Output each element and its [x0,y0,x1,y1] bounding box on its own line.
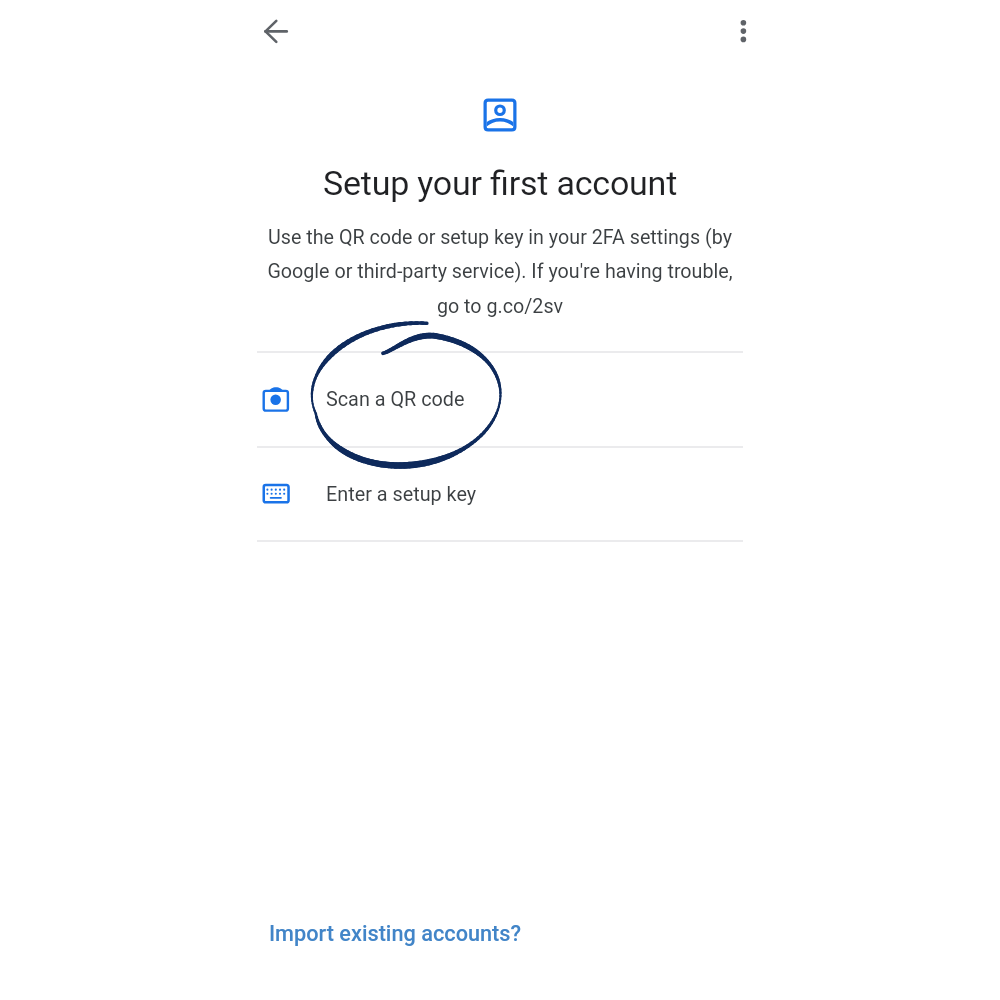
button[interactable]: Scan a QR code [257,352,743,446]
staticText: Use the QR code or setup key in your 2FA… [240,226,760,318]
staticText: Setup your first account [0,163,1000,203]
button[interactable]: Import existing accounts? [258,910,511,956]
staticText: Scan a QR code [326,388,465,411]
button[interactable]: More options [720,8,766,54]
staticText: Import existing accounts? [269,921,522,946]
button[interactable]: Enter a setup key [257,447,743,541]
button[interactable]: Back [253,8,299,54]
staticText: Enter a setup key [326,483,477,506]
